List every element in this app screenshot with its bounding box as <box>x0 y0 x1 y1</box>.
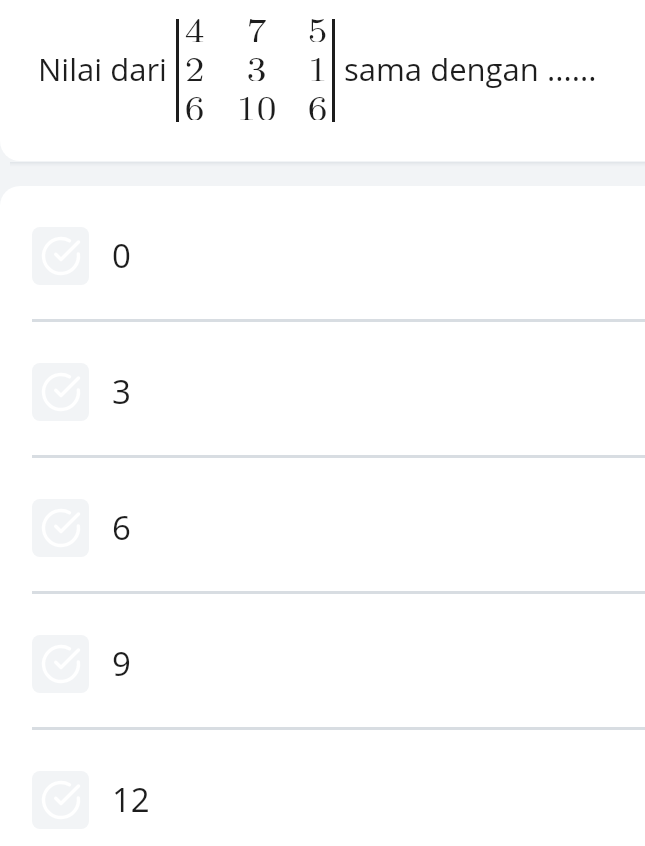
staticText: 4 <box>184 3 205 42</box>
button[interactable]: Select answer <box>0 594 645 727</box>
staticText: Nilai dari <box>38 48 167 90</box>
other: Select answer <box>40 371 82 413</box>
staticText: 0 <box>112 233 131 278</box>
button[interactable]: Select answer <box>0 730 645 846</box>
other: Select answer <box>40 235 82 277</box>
staticText: 5 <box>307 3 328 42</box>
staticText: sama dengan ...... <box>344 48 597 90</box>
staticText: 10 <box>236 81 277 120</box>
staticText: 3 <box>112 369 131 414</box>
staticText: 3 <box>246 42 267 81</box>
staticText: 6 <box>184 81 205 120</box>
staticText: 9 <box>112 641 131 686</box>
other: Select answer <box>40 507 82 549</box>
staticText: 6 <box>112 505 131 550</box>
staticText: 6 <box>307 81 328 120</box>
staticText: 12 <box>112 777 150 822</box>
button[interactable]: Select answer <box>0 186 645 319</box>
other: Select answer <box>40 779 82 821</box>
staticText: 1 <box>307 42 328 81</box>
staticText: 2 <box>184 42 205 81</box>
staticText: 7 <box>246 3 267 42</box>
button[interactable]: Select answer <box>0 458 645 591</box>
button[interactable]: Select answer <box>0 322 645 455</box>
other: Select answer <box>40 643 82 685</box>
